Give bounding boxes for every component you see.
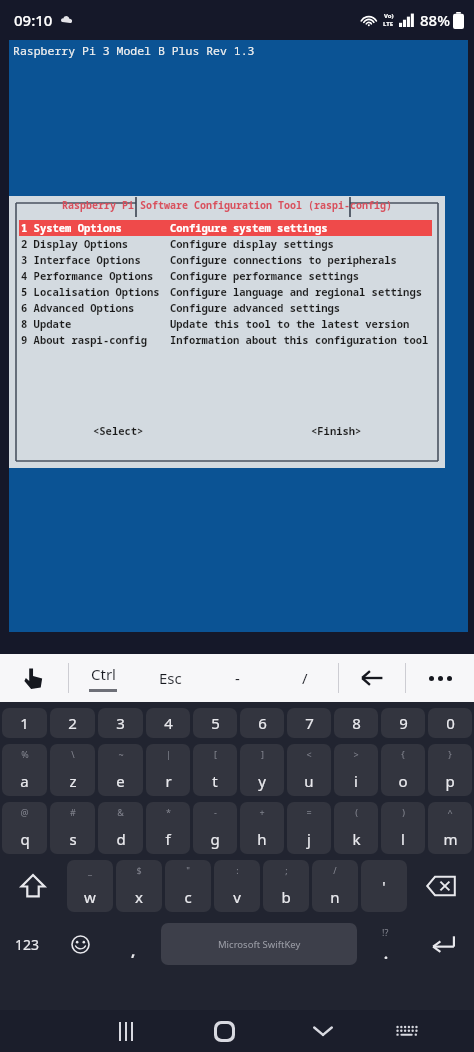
button[interactable]: 4 (146, 708, 190, 738)
button[interactable]: / (271, 654, 338, 702)
button[interactable]: < (287, 744, 331, 796)
button[interactable]: 6 Advanced Options (19, 300, 432, 316)
button[interactable]: <Select> (89, 420, 148, 442)
button[interactable]: = (287, 802, 331, 854)
button[interactable]: ] (240, 744, 284, 796)
staticText: Raspberry Pi Software Configuration Tool… (62, 198, 392, 212)
staticText: 1 (20, 713, 29, 733)
button[interactable]: | (146, 744, 190, 796)
staticText: LTE (383, 20, 394, 28)
button[interactable]: 6 (240, 708, 284, 738)
button[interactable]: \ (50, 744, 95, 796)
staticText: / (333, 864, 337, 876)
button[interactable]: 9 (381, 708, 425, 738)
button[interactable]: Backspace (410, 860, 472, 912)
button[interactable]: - (193, 802, 237, 854)
staticText: h (257, 829, 267, 849)
staticText: 9 (399, 713, 408, 733)
button[interactable]: 1 (2, 708, 47, 738)
button[interactable]: 1 System Options (19, 220, 432, 236)
button[interactable]: $ (116, 860, 162, 912)
staticText: : (236, 864, 239, 876)
staticText: 5 (211, 713, 220, 733)
button[interactable]: - (204, 654, 271, 702)
button[interactable]: Shift (2, 860, 64, 912)
button[interactable]: [ (193, 744, 237, 796)
staticText: b (281, 887, 291, 907)
button[interactable]: ' (361, 860, 407, 912)
button[interactable]: + (240, 802, 284, 854)
button[interactable]: More options (406, 654, 474, 702)
staticText: [ (214, 748, 217, 760)
button[interactable]: _ (67, 860, 113, 912)
button[interactable]: ) (381, 802, 425, 854)
staticText: - (235, 668, 240, 688)
button[interactable]: !? (360, 918, 410, 970)
button[interactable]: Keyboard layout (367, 1010, 447, 1052)
button[interactable]: 7 (287, 708, 331, 738)
staticText: 8 Update (21, 317, 72, 331)
button[interactable]: 2 (50, 708, 95, 738)
button[interactable]: & (98, 802, 143, 854)
staticText: 6 (258, 713, 267, 733)
staticText: 3 Interface Options (21, 253, 141, 267)
button[interactable]: 123 (2, 918, 52, 970)
staticText: e (116, 771, 125, 791)
button[interactable]: Home (171, 1010, 278, 1052)
button[interactable]: @ (2, 802, 47, 854)
staticText: ^ (447, 806, 453, 818)
button[interactable]: { (381, 744, 425, 796)
staticText: !? (382, 926, 389, 938)
button[interactable]: Recent apps (81, 1010, 171, 1052)
staticText: | (166, 748, 171, 760)
button[interactable]: Hide keyboard (278, 1010, 367, 1052)
staticText: z (69, 771, 77, 791)
button[interactable]: 4 Performance Options (19, 268, 432, 284)
button[interactable]: ~ (98, 744, 143, 796)
staticText: / (302, 668, 308, 688)
button[interactable]: 9 About raspi-config (19, 332, 432, 348)
button[interactable]: 2 Display Options (19, 236, 432, 252)
button[interactable]: 8 Update (19, 316, 432, 332)
button[interactable]: } (428, 744, 472, 796)
button[interactable]: / (312, 860, 358, 912)
button[interactable]: > (334, 744, 378, 796)
button[interactable]: 0 (428, 708, 472, 738)
button[interactable]: " (165, 860, 211, 912)
button[interactable]: 5 (193, 708, 237, 738)
button[interactable]: ; (263, 860, 309, 912)
staticText: g (210, 829, 220, 849)
staticText: Information about this configuration too… (170, 333, 429, 347)
button[interactable]: Emoji (55, 918, 105, 970)
button[interactable]: # (50, 802, 95, 854)
staticText: _ (88, 864, 92, 876)
button[interactable]: , (108, 918, 158, 970)
button[interactable]: Touchpad (0, 654, 68, 702)
staticText: q (20, 829, 30, 849)
staticText: * (166, 806, 171, 818)
button[interactable]: 8 (334, 708, 378, 738)
button[interactable]: ( (334, 802, 378, 854)
button[interactable]: : (214, 860, 260, 912)
button[interactable]: Space (161, 923, 357, 965)
staticText: < (306, 748, 312, 760)
button[interactable]: Esc (137, 654, 204, 702)
button[interactable]: ^ (428, 802, 472, 854)
button[interactable]: 5 Localisation Options (19, 284, 432, 300)
staticText: l (401, 829, 405, 849)
button[interactable]: <Finish> (307, 420, 366, 442)
button[interactable]: 3 (98, 708, 143, 738)
staticText: 7 (305, 713, 314, 733)
staticText: & (117, 806, 124, 818)
button[interactable]: * (146, 802, 190, 854)
staticText: ; (285, 864, 288, 876)
button[interactable]: Enter (413, 918, 472, 970)
button[interactable]: % (2, 744, 47, 796)
button[interactable]: Back arrow (339, 654, 405, 702)
staticText: Esc (159, 668, 182, 688)
staticText: Configure language and regional settings (170, 285, 422, 299)
button[interactable]: 3 Interface Options (19, 252, 432, 268)
staticText: 8 (352, 713, 361, 733)
staticText: o (398, 771, 408, 791)
button[interactable]: Ctrl (69, 654, 137, 702)
